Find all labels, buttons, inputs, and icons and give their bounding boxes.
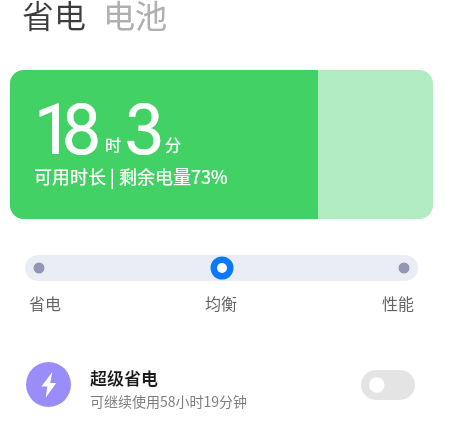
- button[interactable]: Toggle super power saving: [361, 370, 415, 400]
- button[interactable]: 电池: [93, 0, 178, 47]
- staticText: 1: [34, 90, 73, 171]
- staticText: 均衡: [205, 291, 238, 314]
- button[interactable]: [25, 255, 418, 281]
- staticText: 省电: [29, 291, 62, 314]
- button[interactable]: 超级省电: [0, 356, 450, 414]
- staticText: 超级省电: [90, 365, 158, 390]
- staticText: 可继续使用58小时19分钟: [90, 391, 248, 411]
- staticText: 可用时长 | 剩余电量73%: [34, 163, 228, 189]
- staticText: 电池: [103, 0, 168, 37]
- button[interactable]: 省电: [12, 0, 97, 47]
- button[interactable]: Balanced mode selected: [209, 255, 235, 281]
- staticText: 性能: [382, 291, 415, 314]
- staticText: 分: [165, 132, 182, 155]
- staticText: 时: [105, 132, 122, 155]
- button[interactable]: 省电: [17, 281, 74, 324]
- button[interactable]: 性能: [370, 281, 427, 324]
- button[interactable]: 1: [10, 70, 433, 219]
- staticText: 3: [125, 90, 164, 171]
- staticText: 省电: [22, 0, 87, 37]
- staticText: 8: [62, 90, 101, 171]
- button[interactable]: 均衡: [193, 281, 250, 324]
